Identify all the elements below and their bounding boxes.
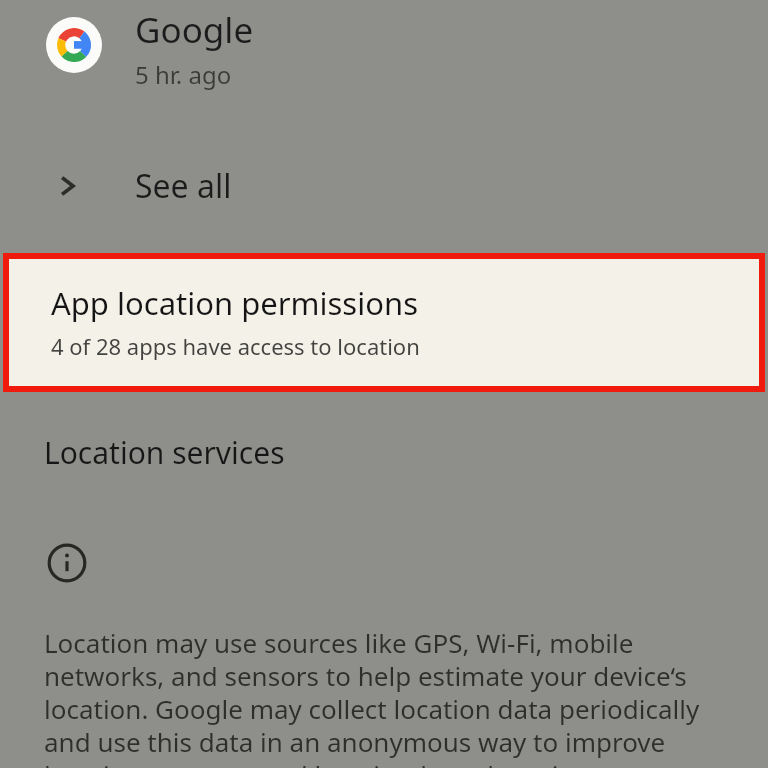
button[interactable]: See all [0, 148, 768, 224]
staticText: Location may use sources like GPS, Wi-Fi… [44, 625, 706, 768]
button[interactable]: App location permissions [3, 253, 765, 392]
staticText: Location services [44, 432, 285, 473]
button[interactable]: Google [0, 0, 768, 100]
staticText: Google [135, 6, 254, 54]
staticText: 5 hr. ago [135, 58, 232, 91]
staticText: App location permissions [51, 282, 418, 324]
button[interactable]: Information [46, 542, 88, 584]
staticText: 4 of 28 apps have access to location [51, 331, 420, 361]
staticText: See all [135, 164, 232, 208]
